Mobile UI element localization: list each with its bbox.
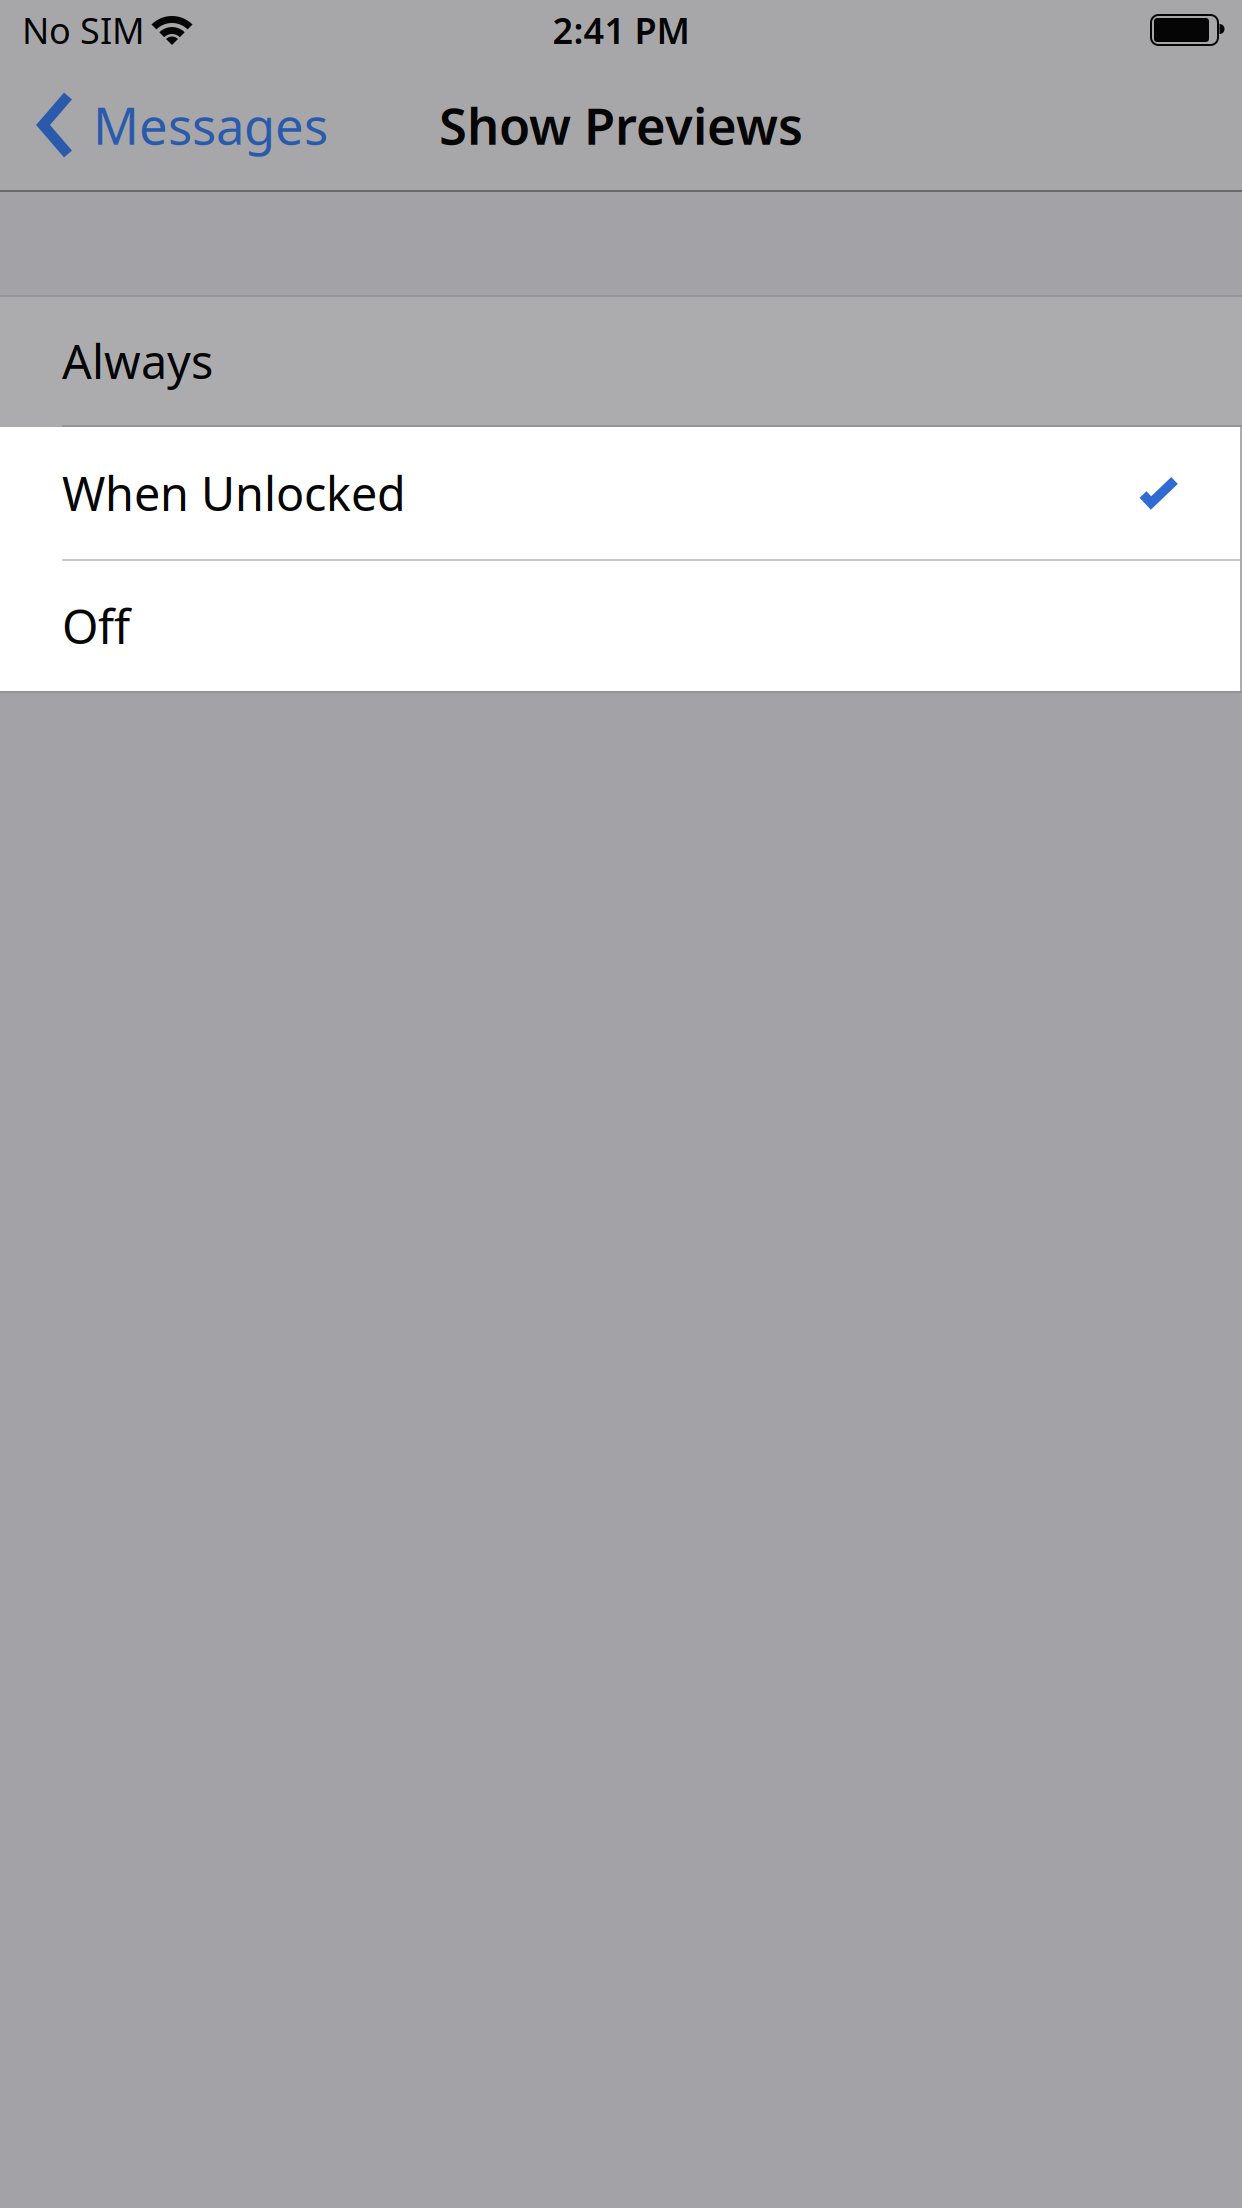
- button[interactable]: Back: [0, 90, 328, 160]
- staticText: Off: [62, 595, 130, 657]
- button[interactable]: Off: [0, 561, 1242, 691]
- staticText: 2:41 PM: [552, 6, 689, 54]
- button[interactable]: When Unlocked: [0, 427, 1242, 559]
- staticText: When Unlocked: [62, 462, 406, 524]
- button[interactable]: Always: [0, 297, 1242, 425]
- staticText: Always: [62, 330, 213, 392]
- staticText: Messages: [93, 91, 328, 159]
- staticText: No SIM: [22, 6, 145, 54]
- staticText: Show Previews: [439, 91, 803, 159]
